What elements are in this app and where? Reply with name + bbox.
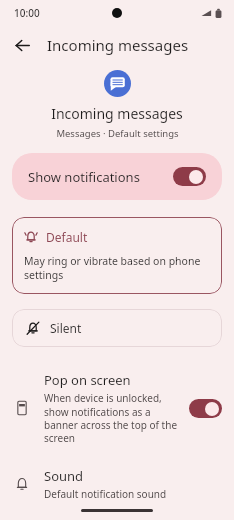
staticText: Messages · Default settings [56, 127, 179, 140]
button[interactable]: Default [12, 217, 222, 294]
staticText: Sound [44, 467, 84, 485]
staticText: Incoming messages [47, 35, 189, 55]
staticText: Pop on screen [44, 371, 131, 389]
staticText: Silent [50, 320, 82, 336]
staticText: Default notification sound [44, 487, 167, 501]
staticText: Show notifications [28, 168, 173, 186]
button[interactable]: Silent [12, 309, 222, 347]
button[interactable]: Sound [0, 459, 234, 509]
staticText: Incoming messages [51, 104, 183, 123]
staticText: When device is unlocked, show notificati… [44, 391, 179, 445]
button[interactable]: Back [6, 29, 38, 61]
staticText: Default [46, 229, 88, 245]
button[interactable]: Show notifications [12, 153, 222, 200]
button[interactable]: Pop on screen [0, 365, 234, 451]
staticText: 10:00 [14, 6, 40, 20]
staticText: May ring or vibrate based on phone setti… [24, 254, 210, 282]
